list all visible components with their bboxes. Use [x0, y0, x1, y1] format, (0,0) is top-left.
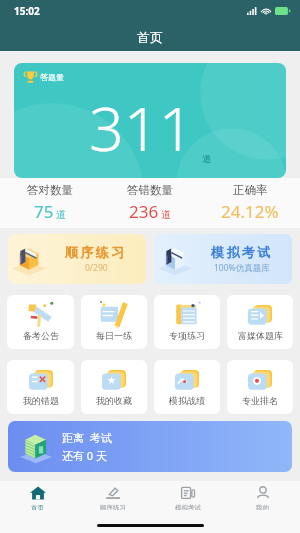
button[interactable]: 正确率: [200, 178, 300, 228]
staticText: 15:02: [14, 4, 40, 18]
button[interactable]: 备考公告: [7, 295, 74, 349]
staticText: 富媒体题库: [238, 330, 283, 341]
staticText: 311: [89, 86, 194, 169]
staticText: 备考公告: [23, 330, 59, 341]
button[interactable]: 我的: [225, 486, 300, 510]
button[interactable]: 首页: [0, 486, 75, 510]
staticText: 首页: [137, 29, 163, 45]
staticText: 距离 考试: [62, 430, 112, 445]
staticText: 答错数量: [127, 183, 173, 197]
staticText: 24.12%: [221, 200, 279, 223]
staticText: 我的: [256, 504, 269, 510]
staticText: 道: [202, 153, 211, 164]
button[interactable]: 富媒体题库: [227, 295, 293, 349]
staticText: 我的收藏: [96, 395, 132, 406]
button[interactable]: 顺序练习: [8, 234, 146, 284]
staticText: 还有 0 天: [62, 448, 108, 463]
staticText: 模拟考试: [175, 504, 201, 510]
button[interactable]: 顺序练习: [75, 486, 150, 510]
button[interactable]: 每日一练: [81, 295, 147, 349]
button[interactable]: 距离 考试: [8, 421, 292, 472]
button[interactable]: 答错数量: [100, 178, 200, 228]
staticText: 75: [34, 200, 54, 223]
staticText: 模拟战绩: [169, 395, 205, 406]
staticText: 每日一练: [96, 330, 132, 341]
staticText: 道: [56, 208, 66, 221]
staticText: 0/290: [85, 262, 108, 274]
staticText: 我的错题: [23, 395, 59, 406]
staticText: 236: [129, 200, 159, 223]
button[interactable]: 我的错题: [7, 360, 74, 414]
staticText: 顺序练习: [100, 504, 126, 510]
staticText: 答题量: [40, 72, 64, 82]
staticText: 道: [161, 208, 171, 221]
button[interactable]: 模拟考试: [154, 234, 292, 284]
button[interactable]: 答对数量: [0, 178, 100, 228]
staticText: 100%仿真题库: [214, 262, 270, 274]
staticText: 答对数量: [27, 183, 73, 197]
staticText: 首页: [31, 504, 44, 510]
button[interactable]: 模拟战绩: [154, 360, 220, 414]
button[interactable]: 专项练习: [154, 295, 220, 349]
button[interactable]: 专业排名: [227, 360, 293, 414]
button[interactable]: 我的收藏: [81, 360, 147, 414]
staticText: 顺序练习: [65, 244, 127, 260]
staticText: 模拟考试: [211, 244, 273, 260]
button[interactable]: 答题量: [14, 63, 286, 178]
staticText: 专项练习: [169, 330, 205, 341]
staticText: 专业排名: [242, 395, 278, 406]
button[interactable]: 模拟考试: [150, 486, 225, 510]
staticText: 正确率: [233, 183, 268, 197]
